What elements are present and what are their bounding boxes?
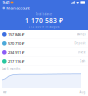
staticText: Invest — [77, 51, 85, 54]
staticText: Mar — [2, 90, 6, 94]
staticText: 1 170 583 ₽ — [25, 16, 63, 25]
staticText: Cash — [79, 60, 85, 63]
button[interactable]: 570 710 ₽ — [0, 39, 88, 48]
button[interactable]: 234 911 ₽ — [0, 48, 88, 57]
staticText: 570 710 ₽ — [8, 41, 24, 46]
staticText: Main account — [6, 5, 29, 11]
button[interactable]: 157 846 ₽ — [0, 30, 88, 39]
button[interactable]: 217 116 ₽ — [0, 57, 88, 66]
staticText: +12 400 ₽ in August — [28, 25, 59, 28]
staticText: 217 116 ₽ — [8, 59, 24, 64]
staticText: 157 846 ₽ — [8, 32, 24, 37]
staticText: Savings — [76, 33, 85, 36]
staticText: Deposit — [74, 42, 85, 45]
button[interactable]: Main account — [0, 5, 88, 11]
staticText: Last 6 months — [2, 67, 20, 71]
staticText: Total balance — [35, 12, 52, 16]
staticText: 9:41 — [2, 0, 9, 5]
staticText: Aug — [79, 90, 85, 94]
staticText: 234 911 ₽ — [8, 50, 24, 55]
